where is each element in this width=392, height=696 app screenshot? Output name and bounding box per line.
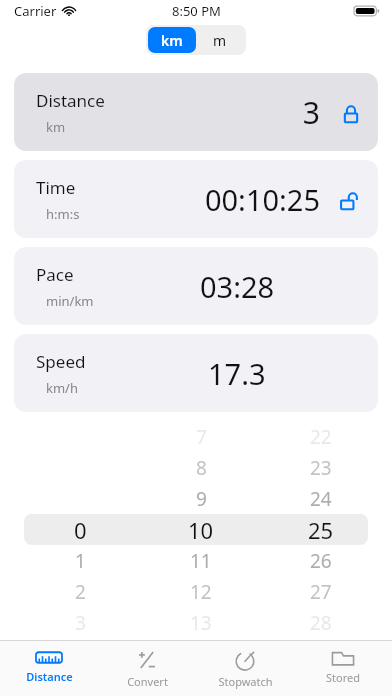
staticText: Time [36, 176, 76, 199]
button[interactable]: Unlocked [338, 187, 364, 213]
staticText: 10 [188, 515, 214, 545]
staticText: Carrier [14, 2, 57, 20]
staticText: 1 [75, 548, 86, 574]
button[interactable]: Distance [14, 73, 378, 151]
button[interactable]: 23 [0, 452, 392, 483]
staticText: Convert [127, 674, 168, 689]
staticText: 7 [196, 424, 207, 450]
button[interactable]: 8 [0, 452, 392, 483]
button[interactable]: 1 [0, 545, 392, 576]
button[interactable]: m [196, 27, 244, 53]
staticText: 11 [190, 548, 212, 574]
button[interactable]: Time [14, 160, 378, 238]
button[interactable]: 24 [0, 483, 392, 514]
staticText: 22 [310, 424, 332, 450]
button[interactable]: Speed [14, 334, 378, 412]
staticText: 12 [190, 579, 212, 605]
staticText: min/km [46, 292, 94, 310]
staticText: 00:10:25 [204, 180, 320, 219]
button[interactable]: 26 [0, 545, 392, 576]
staticText: 2 [75, 579, 86, 605]
staticText: 9 [196, 486, 207, 512]
button[interactable]: Distance [0, 641, 98, 696]
staticText: Speed [36, 350, 86, 373]
staticText: 8 [196, 455, 207, 481]
button[interactable]: Locked [338, 100, 364, 126]
button[interactable]: 25 [0, 514, 392, 545]
staticText: Stopwatch [218, 674, 273, 689]
button[interactable]: Convert [98, 641, 196, 696]
staticText: 23 [310, 455, 332, 481]
button[interactable]: 2 [0, 576, 392, 607]
staticText: 26 [310, 548, 332, 574]
staticText: m [213, 31, 227, 50]
button[interactable]: Stopwatch [196, 641, 294, 696]
staticText: km [46, 118, 66, 136]
button[interactable]: 10 [0, 514, 392, 545]
staticText: Stored [326, 670, 360, 685]
staticText: 0 [74, 515, 87, 545]
staticText: 03:28 [200, 267, 275, 306]
staticText: km/h [46, 379, 78, 397]
button[interactable]: Stored [294, 641, 392, 696]
button[interactable]: 11 [0, 545, 392, 576]
staticText: 17.3 [208, 354, 266, 393]
staticText: Distance [36, 89, 105, 112]
button[interactable]: 12 [0, 576, 392, 607]
button[interactable]: Pace [14, 247, 378, 325]
staticText: 24 [310, 486, 332, 512]
staticText: 27 [310, 579, 332, 605]
staticText: h:m:s [46, 205, 80, 223]
staticText: Distance [26, 669, 73, 684]
staticText: 3 [75, 610, 86, 636]
staticText: Pace [36, 263, 74, 286]
button[interactable]: km [148, 27, 196, 53]
button[interactable]: 27 [0, 576, 392, 607]
staticText: 28 [310, 610, 332, 636]
staticText: km [161, 31, 183, 50]
staticText: 25 [308, 515, 334, 545]
staticText: 8:50 PM [172, 2, 221, 20]
staticText: 13 [190, 610, 212, 636]
staticText: 3 [302, 92, 320, 133]
button[interactable]: 9 [0, 483, 392, 514]
button[interactable]: 0 [0, 514, 392, 545]
